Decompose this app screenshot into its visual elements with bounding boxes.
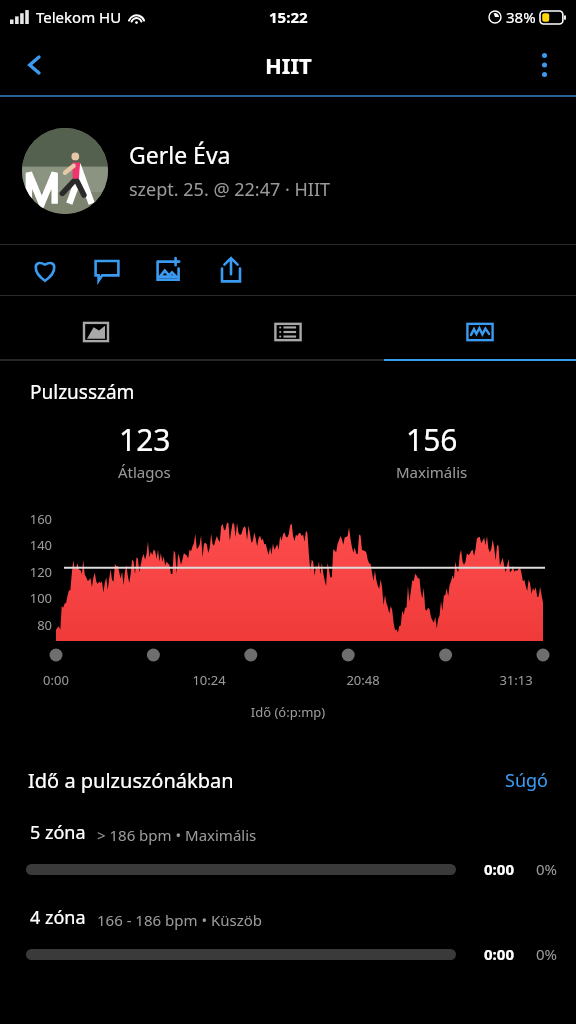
- staticText: Idő (ó:p:mp): [0, 703, 576, 721]
- button[interactable]: Share: [200, 245, 262, 295]
- button[interactable]: 5 zóna: [0, 820, 576, 879]
- staticText: 80: [26, 616, 52, 634]
- staticText: 15:22: [269, 7, 308, 27]
- button[interactable]: Back: [0, 34, 70, 95]
- staticText: szept. 25. @ 22:47 · HIIT: [129, 177, 331, 202]
- staticText: 160: [26, 510, 52, 528]
- button[interactable]: 123: [0, 419, 288, 482]
- staticText: 4 zóna: [30, 905, 86, 930]
- staticText: 120: [26, 563, 52, 581]
- staticText: 123: [119, 419, 171, 460]
- staticText: 31:13: [488, 671, 544, 689]
- button[interactable]: 156: [288, 419, 576, 482]
- staticText: 10:24: [181, 671, 237, 689]
- staticText: Pulzusszám: [30, 379, 135, 405]
- staticText: > 186 bpm • Maximális: [97, 825, 257, 845]
- staticText: 38%: [506, 7, 536, 27]
- button[interactable]: List: [192, 304, 384, 359]
- button[interactable]: Gerle Éva: [0, 97, 576, 244]
- staticText: Telekom HU: [36, 7, 122, 27]
- staticText: 166 - 186 bpm • Küszöb: [97, 910, 263, 930]
- staticText: HIIT: [265, 50, 312, 80]
- staticText: Gerle Éva: [129, 139, 231, 170]
- staticText: Idő a pulzuszónákban: [28, 767, 234, 794]
- staticText: Átlagos: [118, 462, 171, 482]
- staticText: 0:00: [28, 671, 84, 689]
- button[interactable]: Comment: [76, 245, 138, 295]
- staticText: Maximális: [396, 462, 468, 482]
- button[interactable]: Súgó: [505, 768, 548, 793]
- button[interactable]: More options: [512, 34, 576, 95]
- staticText: 156: [406, 419, 458, 460]
- button[interactable]: Add photo: [138, 245, 200, 295]
- staticText: 0:00: [484, 944, 514, 964]
- staticText: 0:00: [484, 859, 514, 879]
- staticText: 0%: [536, 859, 558, 879]
- button[interactable]: Map: [0, 304, 192, 359]
- button[interactable]: 4 zóna: [0, 905, 576, 964]
- staticText: 100: [26, 589, 52, 607]
- button[interactable]: Like: [14, 245, 76, 295]
- staticText: 5 zóna: [30, 820, 86, 845]
- button[interactable]: Chart: [384, 304, 576, 359]
- staticText: 0%: [536, 944, 558, 964]
- staticText: Súgó: [505, 768, 548, 793]
- staticText: 20:48: [335, 671, 391, 689]
- staticText: 140: [26, 536, 52, 554]
